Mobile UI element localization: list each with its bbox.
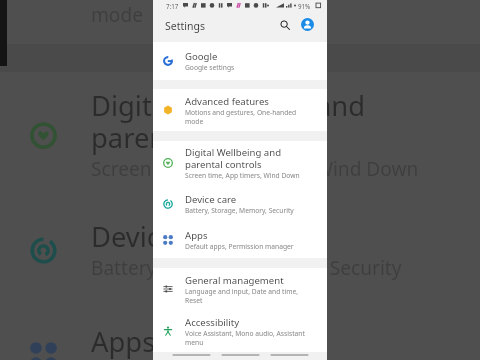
staticText: Device care	[185, 193, 237, 206]
staticText: Default apps, Permission manager	[185, 242, 294, 251]
staticText: Voice Assistant, Mono audio, Assistant m…	[185, 329, 309, 347]
staticText: 7:17	[166, 2, 179, 10]
button[interactable]: General management	[153, 268, 327, 310]
button[interactable]: Google	[153, 42, 327, 80]
staticText: Apps	[91, 323, 156, 360]
staticText: Google settings	[185, 63, 235, 72]
staticText: Digital Wellbeing and parental controls	[91, 87, 429, 156]
staticText: Screen time, App timers, Wind Down	[91, 156, 419, 182]
staticText: Battery, Storage, Memory, Security	[91, 255, 402, 281]
staticText: General management	[185, 274, 284, 287]
button[interactable]: Device care	[153, 185, 327, 222]
button[interactable]: Accessibility	[153, 310, 327, 352]
staticText: Motions and gestures, One-handed mode	[185, 108, 309, 126]
staticText: Language and input, Date and time, Reset	[185, 287, 309, 305]
staticText: Settings	[165, 19, 205, 33]
staticText: Google	[185, 50, 218, 63]
staticText: 91%	[298, 2, 311, 10]
button[interactable]: Account	[301, 18, 314, 31]
staticText: Digital Wellbeing and parental controls	[185, 146, 309, 171]
staticText: Advanced features	[185, 95, 269, 108]
button[interactable]: Advanced features	[0, 0, 480, 44]
button[interactable]: Apps	[0, 303, 480, 360]
staticText: Device care	[91, 218, 238, 255]
button[interactable]: Digital Wellbeing and parental controls	[153, 141, 327, 185]
staticText: Screen time, App timers, Wind Down	[185, 171, 300, 180]
staticText: Apps	[185, 229, 208, 242]
button[interactable]: Digital Wellbeing and parental controls	[0, 72, 480, 197]
button[interactable]: Device care	[0, 197, 480, 302]
button[interactable]: Apps	[153, 222, 327, 258]
button[interactable]: Advanced features	[153, 89, 327, 131]
staticText: Accessibility	[185, 316, 240, 329]
staticText: Battery, Storage, Memory, Security	[185, 206, 294, 215]
staticText: Motions and gestures, One-handed mode	[91, 0, 429, 28]
button[interactable]: Search	[278, 18, 291, 31]
